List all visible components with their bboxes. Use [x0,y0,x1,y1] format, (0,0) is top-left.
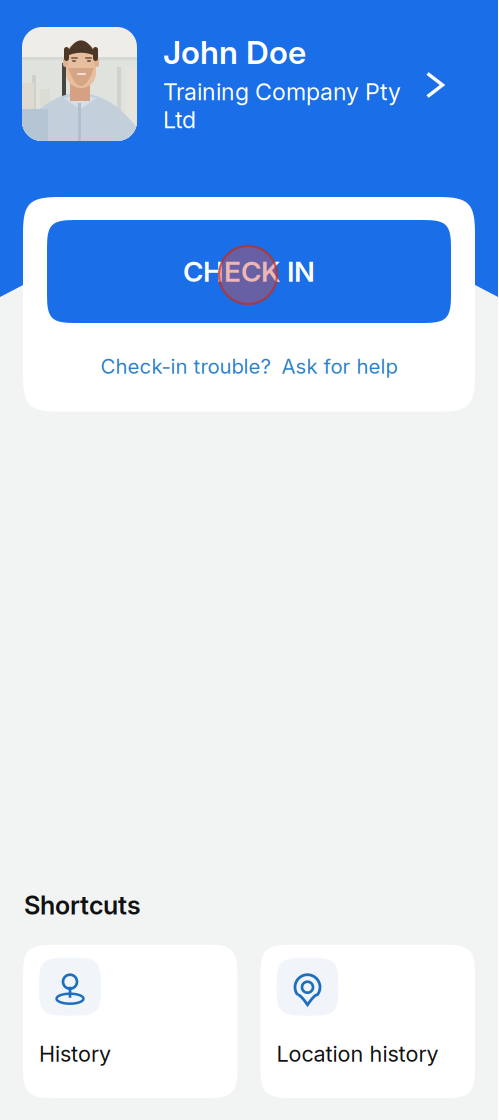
button[interactable]: CHECK IN [47,220,451,323]
staticText: CHECK IN [183,255,315,288]
staticText: History [39,1041,111,1067]
staticText: Location history [276,1041,438,1067]
button[interactable]: History [23,945,237,1098]
staticText: Ask for help [281,354,397,379]
button[interactable]: Profile details [416,0,499,108]
button[interactable]: Check-in trouble? [100,354,270,379]
staticText: Training Company Pty Ltd [163,78,401,134]
staticText: Check-in trouble? [100,354,270,379]
button[interactable]: Location history [260,945,475,1098]
button[interactable]: Ask for help [281,354,397,379]
staticText: John Doe [163,33,306,72]
staticText: Shortcuts [24,890,141,921]
